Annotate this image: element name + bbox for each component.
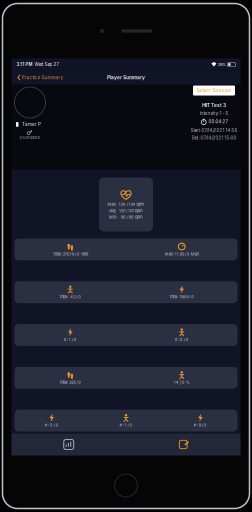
staticText: Select Session [196,88,231,93]
staticText: #: 1 / 0 [119,423,132,427]
staticText: Wed Sep 27 [32,62,58,67]
staticText: #: 0 / 0 [175,337,189,342]
staticText: Start: 07/14/2021 14:56 [190,128,237,133]
staticText: #: 1 / 0 [64,337,77,342]
staticText: Avg: 107 / 107 bpm [109,208,143,213]
staticText: GA0100018 [19,135,39,140]
staticText: Total: 225 / 0 [59,380,81,385]
button[interactable]: Summary [11,436,126,452]
staticText: Max: 134 / 134 bpm [107,202,144,207]
staticText: Intensity: 1 - 5 [199,111,228,116]
staticText: 00:04:27 [208,119,227,124]
staticText: 3:11 PM [16,62,32,67]
staticText: Min: 80 / 80 bpm [109,215,143,219]
staticText: HIIT Test 3 [202,102,226,108]
staticText: #: 9 / 0 [194,423,207,427]
staticText: 29% [218,62,226,67]
staticText: Practice Summary [21,75,63,80]
staticText: #: 0 / 0 [45,423,59,427]
staticText: Total : 42 / 0 [59,294,81,299]
staticText: Total: 7849 / 0 [169,294,194,299]
staticText: Total: 270.16 / 0 Yard [53,251,88,256]
staticText: Player Summary [107,75,145,80]
staticText: Max: 11.83 / 0 Mph [165,251,199,256]
staticText: 14 | 0 % [174,380,190,385]
button[interactable]: Notes [126,436,240,452]
staticText: End: 07/14/2021 15:00 [191,135,236,140]
staticText: Tamer P [22,121,41,127]
button[interactable]: Practice Summary [14,73,66,82]
button[interactable]: Select Session [193,85,235,95]
